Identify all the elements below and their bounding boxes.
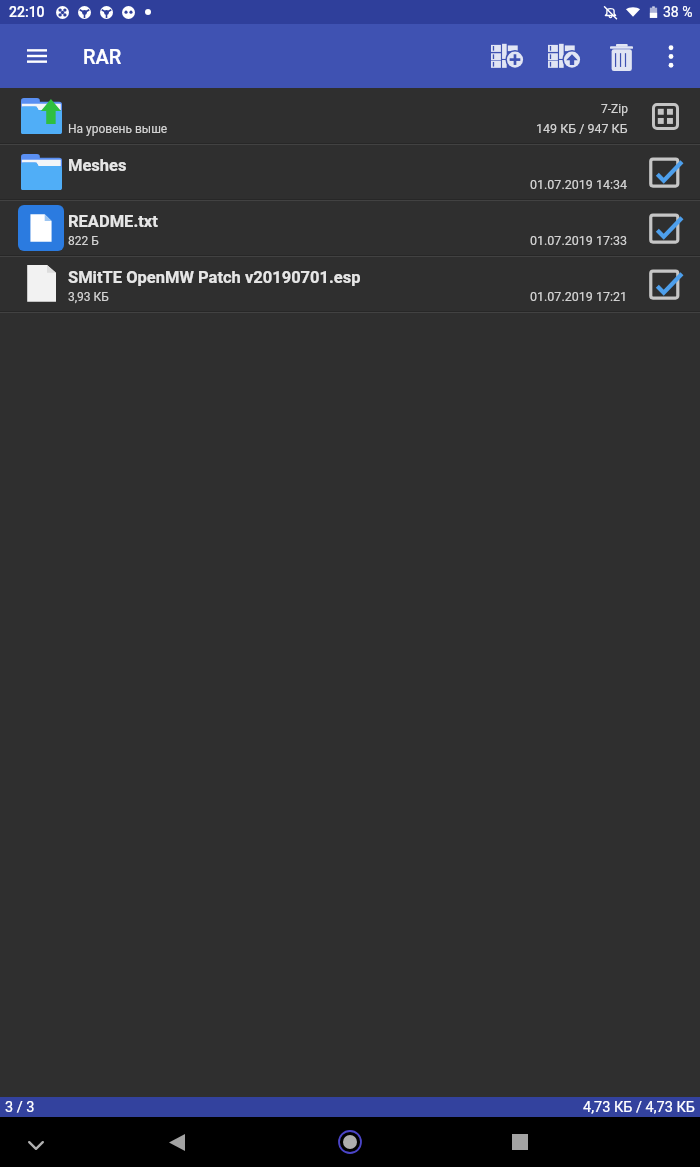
staticText: README.txt [68, 212, 158, 231]
button[interactable]: SMitTE OpenMW Patch v20190701.esp [0, 257, 700, 311]
staticText: 822 Б [68, 234, 99, 248]
staticText: 149 КБ / 947 КБ [536, 121, 628, 136]
button[interactable]: More options [648, 24, 694, 88]
button[interactable]: Delete [593, 24, 648, 88]
staticText: RAR [83, 45, 122, 68]
button[interactable]: Grid view [645, 96, 685, 136]
staticText: 3 / 3 [5, 1099, 35, 1116]
staticText: 38 % [663, 4, 693, 20]
button[interactable]: Selected [645, 264, 685, 304]
staticText: SMitTE OpenMW Patch v20190701.esp [68, 268, 361, 287]
button[interactable]: README.txt [0, 201, 700, 255]
button[interactable]: Meshes [0, 145, 700, 199]
staticText: 3,93 КБ [68, 290, 109, 304]
button[interactable]: Extract from archive [536, 24, 593, 88]
button[interactable]: Menu [0, 24, 74, 88]
staticText: 22:10 [9, 4, 45, 20]
button[interactable]: На уровень выше [0, 89, 700, 143]
button[interactable]: Selected [645, 152, 685, 192]
button[interactable]: Recents [472, 1117, 568, 1167]
staticText: На уровень выше [68, 122, 168, 136]
staticText: 7-Zip [601, 102, 628, 116]
button[interactable]: Back [129, 1117, 225, 1167]
staticText: 01.07.2019 17:33 [530, 233, 628, 248]
staticText: 01.07.2019 14:34 [530, 177, 628, 192]
button[interactable]: Selected [645, 208, 685, 248]
staticText: 01.07.2019 17:21 [530, 289, 628, 304]
button[interactable]: Home [302, 1117, 398, 1167]
button[interactable]: Hide keyboard [0, 1117, 72, 1167]
button[interactable]: Add to archive [479, 24, 536, 88]
staticText: 4,73 КБ / 4,73 КБ [583, 1099, 695, 1116]
staticText: Meshes [68, 156, 127, 175]
